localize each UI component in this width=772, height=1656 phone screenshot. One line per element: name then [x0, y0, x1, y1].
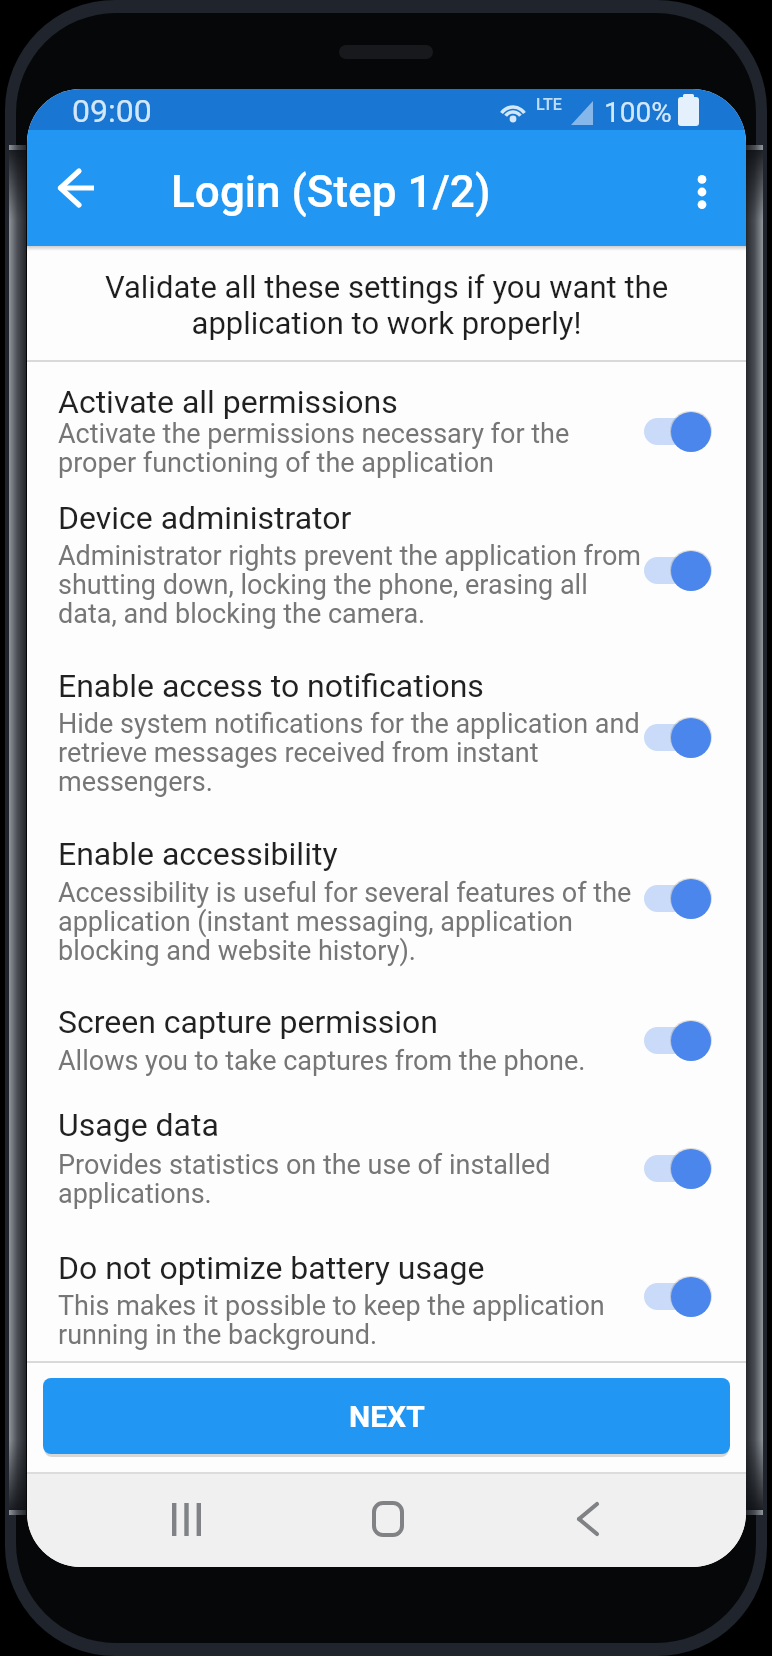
staticText: Activate all permissions: [58, 383, 398, 421]
button[interactable]: [27, 991, 746, 1103]
button[interactable]: [27, 655, 746, 766]
staticText: Provides statistics on the use of instal…: [58, 1149, 551, 1210]
staticText: Enable access to notifications: [58, 667, 484, 705]
button[interactable]: [560, 1486, 616, 1552]
staticText: Activate the permissions necessary for t…: [58, 418, 570, 479]
staticText: Do not optimize battery usage: [58, 1249, 485, 1287]
staticText: Device administrator: [58, 499, 352, 537]
button[interactable]: [644, 1149, 711, 1189]
staticText: This makes it possible to keep the appli…: [58, 1290, 605, 1351]
staticText: Login (Step 1/2): [171, 166, 491, 218]
button[interactable]: [27, 1094, 746, 1207]
button[interactable]: [644, 879, 711, 919]
staticText: Accessibility is useful for several feat…: [58, 877, 632, 967]
staticText: Usage data: [58, 1106, 219, 1144]
staticText: Screen capture permission: [58, 1003, 438, 1041]
button[interactable]: [360, 1486, 416, 1552]
button[interactable]: [27, 823, 746, 935]
staticText: Allows you to take captures from the pho…: [58, 1045, 586, 1077]
staticText: LTE: [536, 95, 562, 114]
button[interactable]: [644, 718, 711, 758]
button[interactable]: [158, 1486, 214, 1552]
staticText: Administrator rights prevent the applica…: [58, 540, 641, 630]
button[interactable]: [644, 1021, 711, 1061]
staticText: Hide system notifications for the applic…: [58, 708, 640, 798]
staticText: Validate all these settings if you want …: [27, 269, 746, 341]
staticText: NEXT: [349, 1399, 425, 1434]
staticText: Enable accessibility: [58, 835, 338, 873]
button[interactable]: [644, 551, 711, 591]
button[interactable]: [644, 412, 711, 452]
button[interactable]: [27, 487, 746, 598]
button[interactable]: [644, 1277, 711, 1317]
staticText: 100%: [604, 96, 672, 129]
button[interactable]: [27, 1237, 746, 1348]
button[interactable]: [49, 160, 105, 216]
staticText: 09:00: [72, 92, 152, 130]
button[interactable]: NEXT: [43, 1378, 730, 1454]
button[interactable]: [27, 371, 746, 476]
button[interactable]: [674, 164, 730, 220]
